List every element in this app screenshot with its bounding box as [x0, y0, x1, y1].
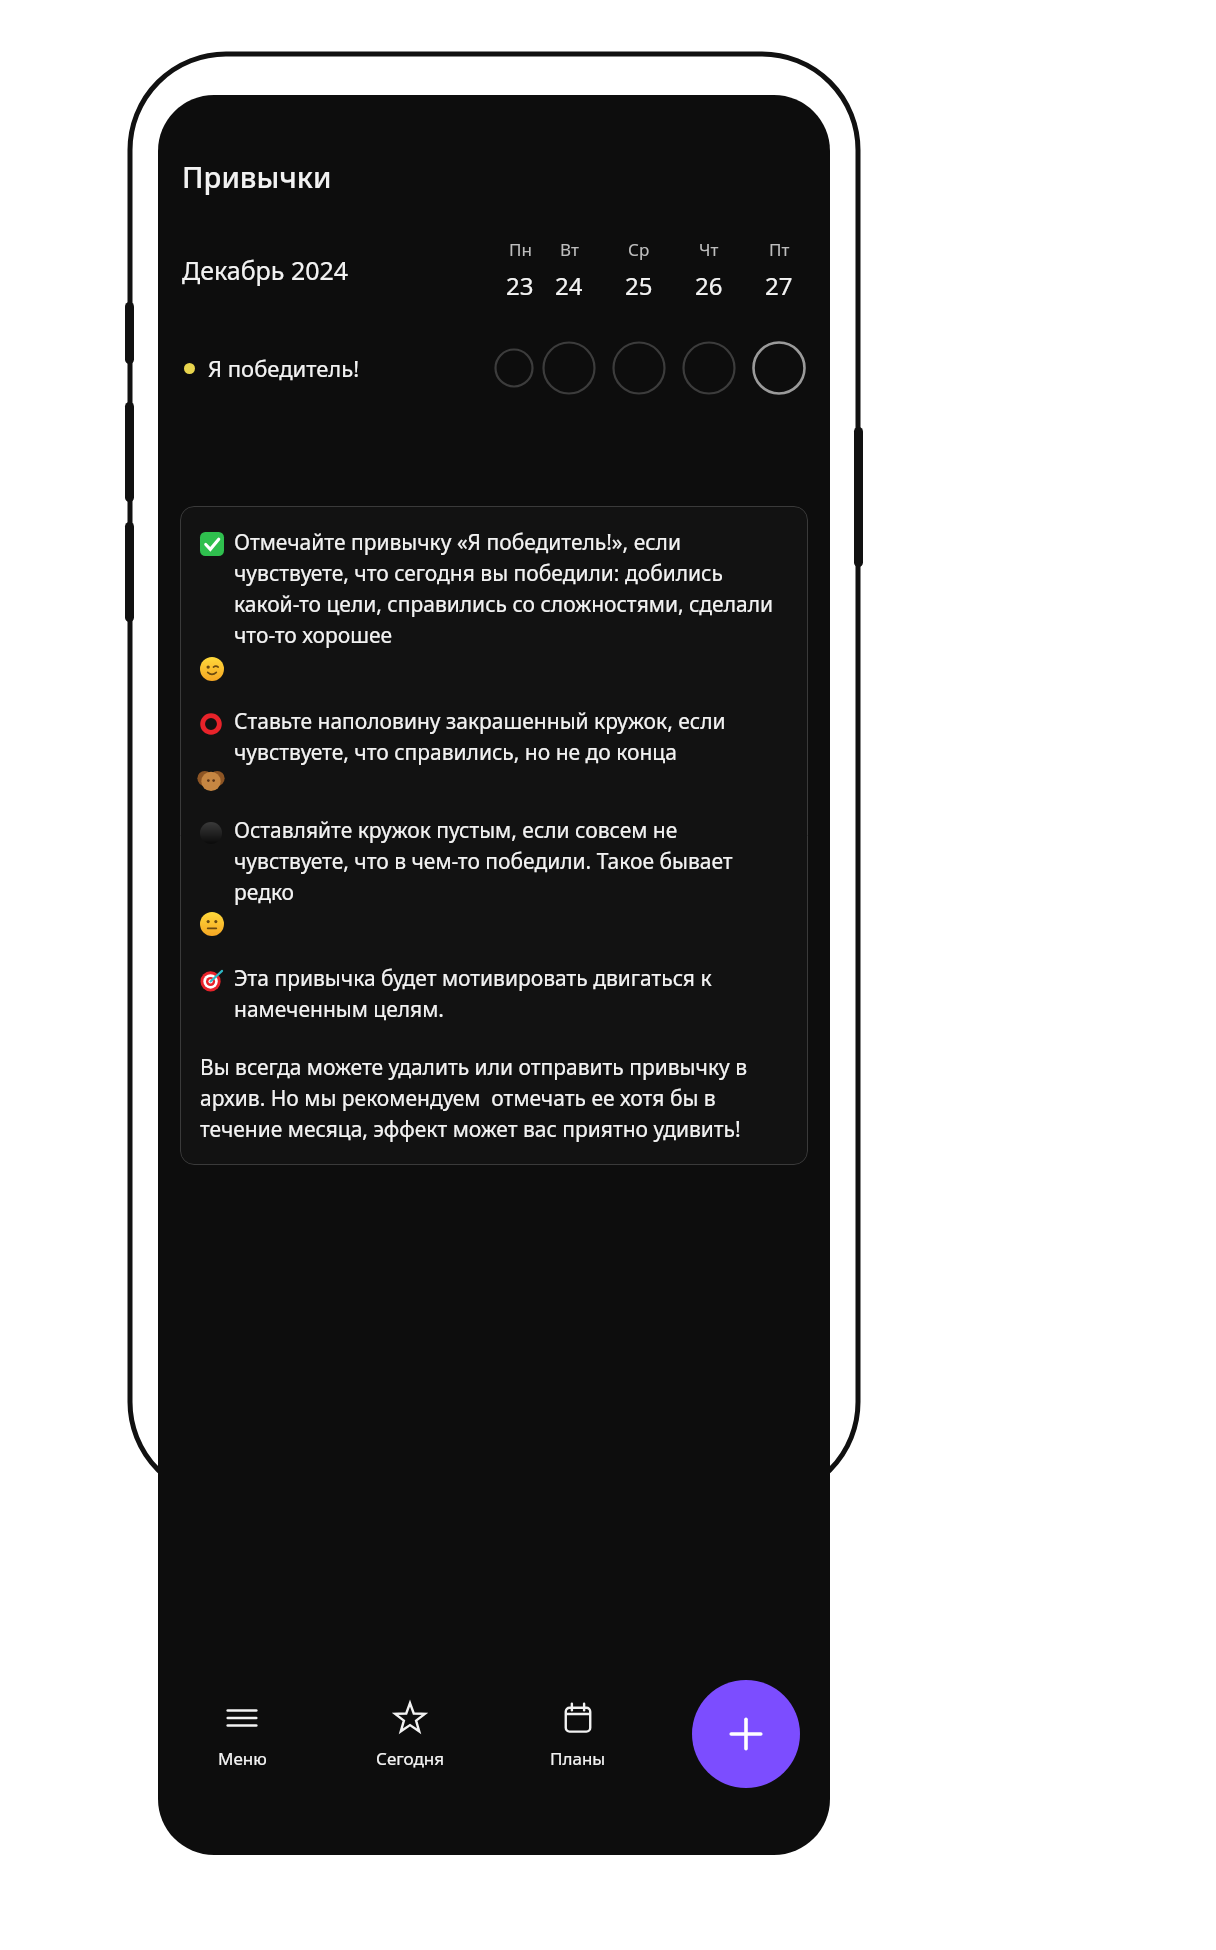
staticText: 23 — [506, 269, 534, 302]
button[interactable]: Вт — [534, 238, 604, 302]
staticText: Меню — [218, 1747, 267, 1770]
staticText: 27 — [765, 269, 793, 302]
staticText: 24 — [555, 269, 583, 302]
button[interactable] — [494, 337, 534, 399]
button[interactable]: Я победитель! — [158, 330, 830, 406]
staticText: Оставляйте кружок пустым, если совсем не… — [234, 816, 788, 906]
button[interactable]: Добавить — [692, 1680, 800, 1788]
button[interactable] — [604, 337, 674, 399]
button[interactable]: Сегодня — [326, 1691, 494, 1780]
staticText: Ставьте наполовину закрашенный кружок, е… — [234, 707, 788, 766]
staticText: Чт — [699, 238, 719, 261]
staticText: Пн — [509, 238, 532, 261]
button[interactable]: Пт — [744, 238, 814, 302]
staticText: Планы — [550, 1747, 606, 1770]
staticText: Привычки — [182, 157, 332, 196]
button[interactable] — [534, 337, 604, 399]
staticText: Пт — [769, 238, 790, 261]
button[interactable]: Меню — [158, 1691, 326, 1780]
button[interactable]: Отмечайте привычку «Я победитель!», если… — [180, 506, 808, 1165]
staticText: Вы всегда можете удалить или отправить п… — [200, 1053, 788, 1143]
staticText: 25 — [625, 269, 653, 302]
staticText: Эта привычка будет мотивировать двигатьс… — [234, 964, 788, 1023]
staticText: 26 — [695, 269, 723, 302]
staticText: Отмечайте привычку «Я победитель!», если… — [234, 528, 788, 649]
staticText: Сегодня — [376, 1747, 445, 1770]
staticText: Декабрь 2024 — [182, 253, 349, 287]
staticText: Ср — [628, 238, 650, 261]
staticText: Вт — [560, 238, 579, 261]
staticText: Я победитель! — [208, 353, 360, 383]
button[interactable] — [744, 337, 814, 399]
button[interactable]: Пн — [494, 238, 534, 302]
button[interactable]: Планы — [494, 1691, 662, 1780]
button[interactable]: Ср — [604, 238, 674, 302]
button[interactable] — [674, 337, 744, 399]
button[interactable]: Чт — [674, 238, 744, 302]
